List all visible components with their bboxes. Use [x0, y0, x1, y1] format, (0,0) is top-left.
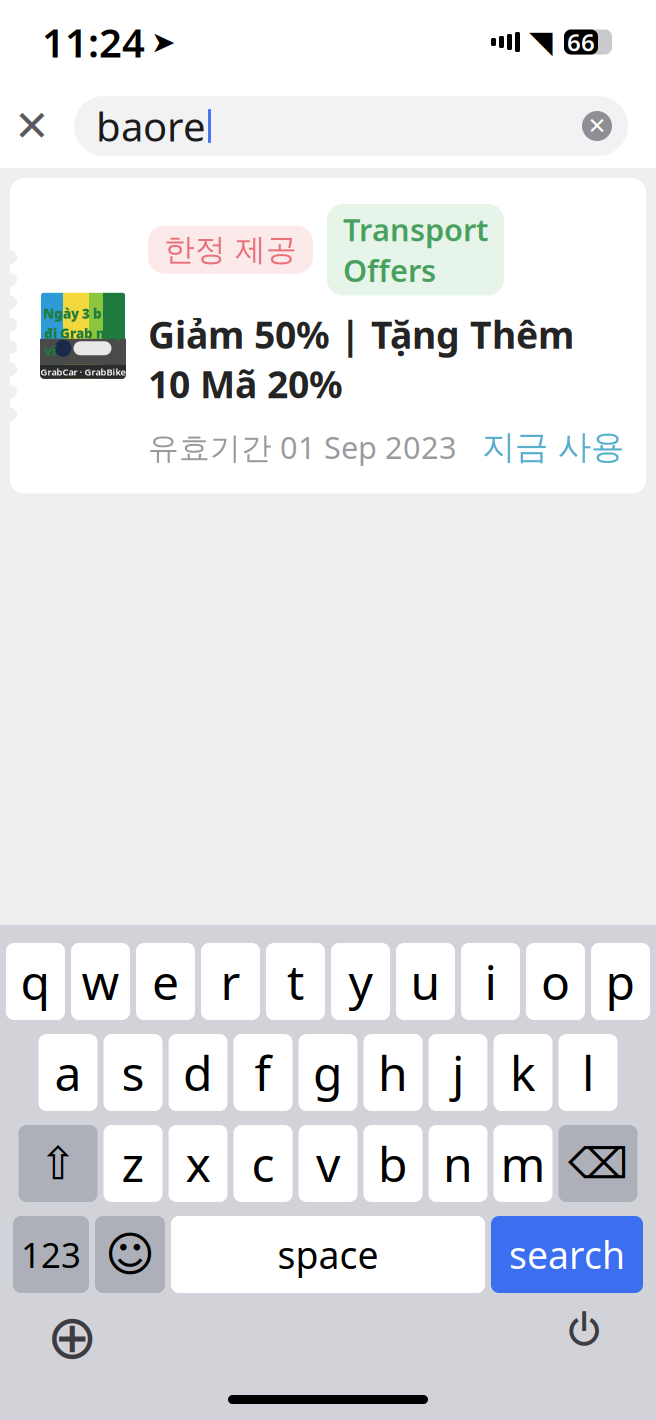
staticText: 지금 사용: [482, 427, 624, 467]
button[interactable]: n: [428, 1125, 487, 1202]
staticText: y: [348, 950, 372, 1013]
staticText: r: [220, 950, 240, 1013]
staticText: ◥: [529, 25, 553, 59]
button[interactable]: t: [266, 943, 325, 1020]
button[interactable]: a: [38, 1034, 97, 1111]
staticText: u: [410, 950, 440, 1013]
button[interactable]: d: [168, 1034, 227, 1111]
button[interactable]: y: [331, 943, 390, 1020]
button[interactable]: b: [363, 1125, 422, 1202]
staticText: t: [287, 950, 304, 1013]
button[interactable]: Dictation: [548, 1301, 620, 1373]
staticText: s: [121, 1041, 144, 1104]
staticText: 유효기간 01 Sep 2023: [148, 427, 457, 467]
button[interactable]: i: [461, 943, 520, 1020]
staticText: m: [500, 1132, 545, 1195]
staticText: j: [452, 1041, 464, 1104]
staticText: 66: [567, 26, 595, 58]
button[interactable]: Next keyboard: [36, 1301, 108, 1373]
staticText: c: [251, 1132, 274, 1195]
staticText: space: [277, 1230, 378, 1279]
button[interactable]: search: [491, 1216, 643, 1293]
button[interactable]: m: [493, 1125, 552, 1202]
button[interactable]: space: [171, 1216, 485, 1293]
staticText: ➤: [151, 25, 176, 59]
staticText: w: [81, 950, 119, 1013]
button[interactable]: p: [591, 943, 650, 1020]
staticText: b: [378, 1132, 408, 1195]
button[interactable]: Close: [0, 94, 64, 158]
staticText: i: [484, 950, 496, 1013]
staticText: e: [152, 950, 179, 1013]
button[interactable]: f: [233, 1034, 292, 1111]
staticText: ⌫: [568, 1139, 628, 1188]
staticText: ⏻: [567, 1302, 601, 1371]
staticText: 한정 제공: [164, 231, 297, 269]
staticText: ✕: [587, 113, 606, 139]
staticText: z: [121, 1132, 144, 1195]
staticText: GrabCar · GrabBike: [40, 366, 125, 378]
button[interactable]: Ngày 3 buổi: [0, 178, 656, 493]
staticText: f: [254, 1041, 271, 1104]
staticText: v: [316, 1132, 340, 1195]
staticText: Ngày 3 buổi: [43, 305, 123, 322]
staticText: d: [183, 1041, 213, 1104]
button[interactable]: u: [396, 943, 455, 1020]
button[interactable]: g: [298, 1034, 357, 1111]
staticText: o: [541, 950, 570, 1013]
button[interactable]: Clear text: [574, 103, 620, 149]
button[interactable]: Shift: [18, 1125, 97, 1202]
button[interactable]: z: [103, 1125, 162, 1202]
button[interactable]: l: [558, 1034, 617, 1111]
button[interactable]: k: [493, 1034, 552, 1111]
staticText: Giảm 50% | Tặng Thêm 10 Mã 20%: [148, 309, 574, 409]
button[interactable]: c: [233, 1125, 292, 1202]
staticText: ⇧: [39, 1138, 77, 1189]
staticText: 11:24: [42, 15, 145, 68]
staticText: ⊕: [46, 1302, 97, 1372]
staticText: l: [582, 1041, 594, 1104]
staticText: n: [443, 1132, 473, 1195]
button[interactable]: q: [6, 943, 65, 1020]
button[interactable]: j: [428, 1034, 487, 1111]
button[interactable]: v: [298, 1125, 357, 1202]
staticText: g: [313, 1041, 343, 1104]
staticText: x: [185, 1132, 210, 1195]
button[interactable]: r: [201, 943, 260, 1020]
staticText: đi Grab nhẹ ví: [44, 324, 122, 360]
button[interactable]: s: [103, 1034, 162, 1111]
staticText: ☺: [105, 1227, 155, 1282]
staticText: k: [510, 1041, 536, 1104]
button[interactable]: x: [168, 1125, 227, 1202]
button[interactable]: e: [136, 943, 195, 1020]
staticText: 123: [21, 1231, 81, 1277]
button[interactable]: 123: [13, 1216, 89, 1293]
button[interactable]: w: [71, 943, 130, 1020]
staticText: p: [605, 950, 635, 1013]
staticText: h: [378, 1041, 408, 1104]
button[interactable]: Emoji: [95, 1216, 165, 1293]
staticText: Transport Offers: [343, 209, 488, 290]
staticText: q: [20, 950, 50, 1013]
staticText: ✕: [14, 102, 50, 150]
staticText: a: [54, 1041, 81, 1104]
button[interactable]: o: [526, 943, 585, 1020]
staticText: baore: [96, 99, 206, 152]
button[interactable]: h: [363, 1034, 422, 1111]
staticText: search: [509, 1230, 625, 1279]
button[interactable]: Delete: [558, 1125, 637, 1202]
